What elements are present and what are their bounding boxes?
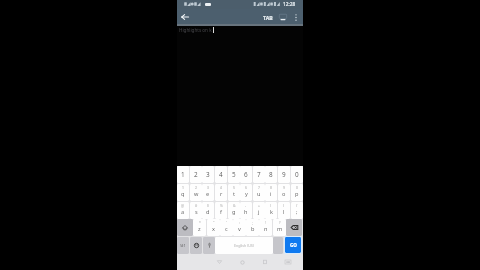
button[interactable]: Home [235, 255, 249, 269]
button[interactable]: !#1 [177, 237, 189, 254]
button[interactable]: x [207, 219, 220, 236]
button[interactable]: 0 [291, 166, 303, 183]
button[interactable]: Highlights on k [179, 26, 214, 33]
button[interactable]: More options [290, 10, 302, 24]
button[interactable]: p [291, 184, 303, 201]
button[interactable]: o [278, 184, 290, 201]
staticText: a [181, 208, 185, 216]
staticText: 6 [245, 185, 247, 190]
button[interactable]: 5 [228, 166, 240, 183]
button[interactable]: TAB [259, 9, 276, 25]
button[interactable]: j [253, 202, 265, 219]
staticText: !#1 [180, 243, 186, 248]
button[interactable]: f [215, 202, 227, 219]
button[interactable]: h [240, 202, 252, 219]
staticText: GO [290, 242, 297, 248]
button[interactable]: v [233, 219, 246, 236]
button[interactable]: g [228, 202, 240, 219]
button[interactable]: b [246, 219, 259, 236]
button[interactable]: 8 [265, 166, 277, 183]
button[interactable]: e [202, 184, 214, 201]
staticText: & [233, 203, 236, 208]
button[interactable]: ; [291, 202, 303, 219]
button[interactable]: 2 [190, 166, 202, 183]
staticText: 7 [257, 170, 261, 179]
staticText: y [245, 190, 248, 198]
button[interactable]: d [202, 202, 214, 219]
staticText: 8 [270, 185, 272, 190]
button[interactable]: i [265, 184, 277, 201]
staticText: ) [283, 203, 285, 208]
staticText: r [220, 190, 223, 198]
button[interactable]: w [190, 184, 202, 201]
button[interactable]: Hide keyboard [276, 10, 290, 24]
button[interactable]: t [228, 184, 240, 201]
staticText: English (US) [234, 243, 254, 248]
staticText: k [270, 208, 273, 216]
staticText: Highlights on k [179, 27, 212, 33]
button[interactable]: a [177, 202, 189, 219]
button[interactable]: z [193, 219, 206, 236]
button[interactable]: s [190, 202, 202, 219]
staticText: % [220, 203, 223, 208]
staticText: t [233, 190, 236, 198]
button[interactable]: 4 [215, 166, 227, 183]
button[interactable]: m [273, 219, 286, 236]
button[interactable]: Back [212, 255, 226, 269]
button[interactable]: 6 [240, 166, 252, 183]
staticText: $ [207, 203, 209, 208]
staticText: 5 [232, 170, 236, 179]
staticText: 0 [296, 185, 298, 190]
staticText: u [257, 190, 261, 198]
button[interactable]: Shift [177, 219, 193, 236]
button[interactable]: l [278, 202, 290, 219]
staticText: 12:28 [283, 1, 296, 8]
button[interactable]: 3 [202, 166, 214, 183]
staticText: i [270, 190, 272, 198]
staticText: 6 [244, 170, 248, 179]
staticText: m [277, 225, 283, 233]
button[interactable]: r [215, 184, 227, 201]
staticText: j [258, 208, 260, 216]
button[interactable]: 9 [278, 166, 290, 183]
staticText: * [199, 220, 201, 225]
button[interactable]: Navigate up [179, 11, 191, 23]
button[interactable]: y [240, 184, 252, 201]
staticText: 3 [207, 185, 209, 190]
staticText: l [283, 208, 285, 216]
staticText: ( [270, 203, 272, 208]
staticText: ' [226, 220, 227, 225]
button[interactable]: c [220, 219, 233, 236]
button[interactable]: 1 [177, 166, 189, 183]
staticText: ; [252, 220, 253, 225]
staticText: # [195, 203, 198, 208]
button[interactable]: Backspace [286, 219, 302, 236]
button[interactable]: k [265, 202, 277, 219]
staticText: 5 [233, 185, 235, 190]
button[interactable]: Space [215, 237, 273, 254]
staticText: ? [279, 220, 281, 225]
staticText: ; [296, 208, 298, 216]
button[interactable]: q [177, 184, 189, 201]
button[interactable]: n [259, 219, 272, 236]
staticText: o [282, 190, 286, 198]
button[interactable]: GO [285, 237, 301, 253]
staticText: 9 [282, 170, 286, 179]
button[interactable]: Change keyboard [281, 255, 295, 269]
staticText: 2 [195, 185, 197, 190]
staticText: 3 [206, 170, 210, 179]
staticText: 1 [181, 170, 185, 179]
staticText: d [206, 208, 210, 216]
staticText: c [225, 225, 228, 233]
staticText: 4 [219, 170, 223, 179]
staticText: 4 [220, 185, 222, 190]
staticText: 2 [194, 170, 198, 179]
staticText: 9 [283, 185, 285, 190]
button[interactable]: Recent apps [258, 255, 272, 269]
button[interactable]: Emoji [190, 237, 202, 254]
button[interactable]: 7 [253, 166, 265, 183]
staticText: 8 [269, 170, 273, 179]
button[interactable]: Voice input [203, 237, 215, 254]
button[interactable]: u [253, 184, 265, 201]
